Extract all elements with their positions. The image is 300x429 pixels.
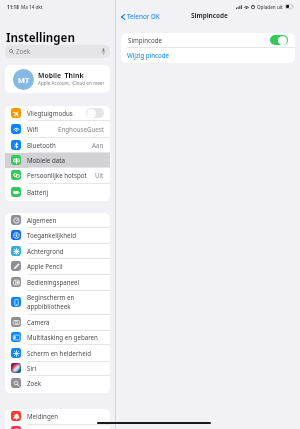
button[interactable]: Geluiden xyxy=(5,424,110,429)
button[interactable]: Aan xyxy=(270,35,288,45)
button[interactable]: Bedieningspaneel xyxy=(5,275,110,291)
staticText: Vliegtuigmodus xyxy=(27,109,83,117)
button[interactable]: Zoek xyxy=(5,376,110,392)
button[interactable]: Vliegtuigmodus xyxy=(5,106,110,121)
staticText: Mobiele data xyxy=(27,156,104,164)
button[interactable]: Wijzig pincode xyxy=(121,48,295,63)
staticText: Achtergrond xyxy=(27,247,104,255)
staticText: EnghouseGuest xyxy=(58,125,104,133)
staticText: Scherm en helderheid xyxy=(27,349,104,357)
button[interactable]: Multitasking en gebaren xyxy=(5,330,110,345)
staticText: Zoek xyxy=(27,379,104,387)
staticText: Toegankelijkheid xyxy=(27,231,104,239)
staticText: Telenor DK xyxy=(127,12,160,21)
staticText: 11:18 xyxy=(7,4,19,10)
button[interactable]: Beginscherm en appbibliotheek xyxy=(5,290,110,315)
staticText: Simpincode xyxy=(191,11,228,20)
staticText: Apple Account, iCloud en meer xyxy=(38,80,105,86)
button[interactable]: Apple Pencil xyxy=(5,259,110,275)
button[interactable]: Uit xyxy=(86,108,104,118)
button[interactable]: Algemeen xyxy=(5,213,110,228)
button[interactable]: Batterij xyxy=(5,184,110,201)
staticText: Persoonlijke hotspot xyxy=(27,171,95,179)
staticText: Batterij xyxy=(27,188,104,196)
staticText: Mobile Think xyxy=(38,71,84,80)
button[interactable]: Wifi xyxy=(5,121,110,138)
staticText: Opladen uit xyxy=(257,4,283,10)
button[interactable]: Simpincode xyxy=(121,33,295,48)
staticText: MT xyxy=(18,75,30,85)
staticText: Bedieningspaneel xyxy=(27,278,104,286)
staticText: Wijzig pincode xyxy=(127,51,170,59)
staticText: Algemeen xyxy=(27,216,104,224)
staticText: Bluetooth xyxy=(27,141,92,149)
button[interactable]: Achtergrond xyxy=(5,244,110,259)
staticText: Camera xyxy=(27,318,104,326)
button[interactable]: Scherm en helderheid xyxy=(5,346,110,362)
staticText: Instellingen xyxy=(6,30,75,46)
staticText: Siri xyxy=(27,364,104,372)
button[interactable]: Siri xyxy=(5,361,110,376)
button[interactable]: Zoek xyxy=(5,45,110,58)
staticText: Aan xyxy=(92,141,104,149)
staticText: Wifi xyxy=(27,125,58,133)
button[interactable]: Toegankelijkheid xyxy=(5,228,110,244)
staticText: Beginscherm en appbibliotheek xyxy=(27,293,104,311)
button[interactable]: Mobiele data xyxy=(5,153,110,168)
staticText: Apple Pencil xyxy=(27,262,104,270)
button[interactable]: Telenor DK xyxy=(120,10,161,23)
button[interactable]: Bluetooth xyxy=(5,138,110,153)
button[interactable]: Meldingen xyxy=(5,409,110,425)
staticText: Uit xyxy=(95,171,104,179)
staticText: Multitasking en gebaren xyxy=(27,333,104,341)
button[interactable]: Camera xyxy=(5,315,110,331)
staticText: Meldingen xyxy=(27,412,104,420)
staticText: Zoek xyxy=(16,47,31,55)
staticText: Ma 14 okt xyxy=(21,4,43,10)
button[interactable]: Persoonlijke hotspot xyxy=(5,168,110,184)
button[interactable]: MT xyxy=(5,65,110,93)
staticText: Simpincode xyxy=(128,36,270,44)
